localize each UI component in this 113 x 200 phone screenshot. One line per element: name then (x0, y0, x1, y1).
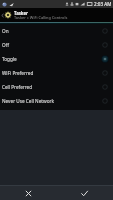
staticText: On (2, 28, 9, 34)
button[interactable]: WiFi Preferred (0, 66, 113, 80)
button[interactable]: Off (0, 38, 113, 52)
staticText: WiFi Preferred (2, 70, 34, 76)
button[interactable]: Cancel (0, 186, 56, 200)
staticText: Never Use Cell Network (2, 98, 54, 104)
button[interactable]: Toggle (0, 52, 113, 66)
button[interactable]: Cell Preferred (0, 80, 113, 94)
button[interactable]: On (0, 24, 113, 38)
staticText: Tasker (14, 10, 29, 16)
staticText: Tasker » WiFi Calling Controls (14, 15, 68, 20)
button[interactable]: Accept (56, 186, 113, 200)
button[interactable]: Navigate up (0, 8, 4, 22)
button[interactable]: Never Use Cell Network (0, 94, 113, 108)
staticText: Off (2, 42, 9, 48)
staticText: Toggle (2, 56, 17, 62)
staticText: 2:03 AM (94, 1, 112, 7)
staticText: Cell Preferred (2, 84, 33, 90)
